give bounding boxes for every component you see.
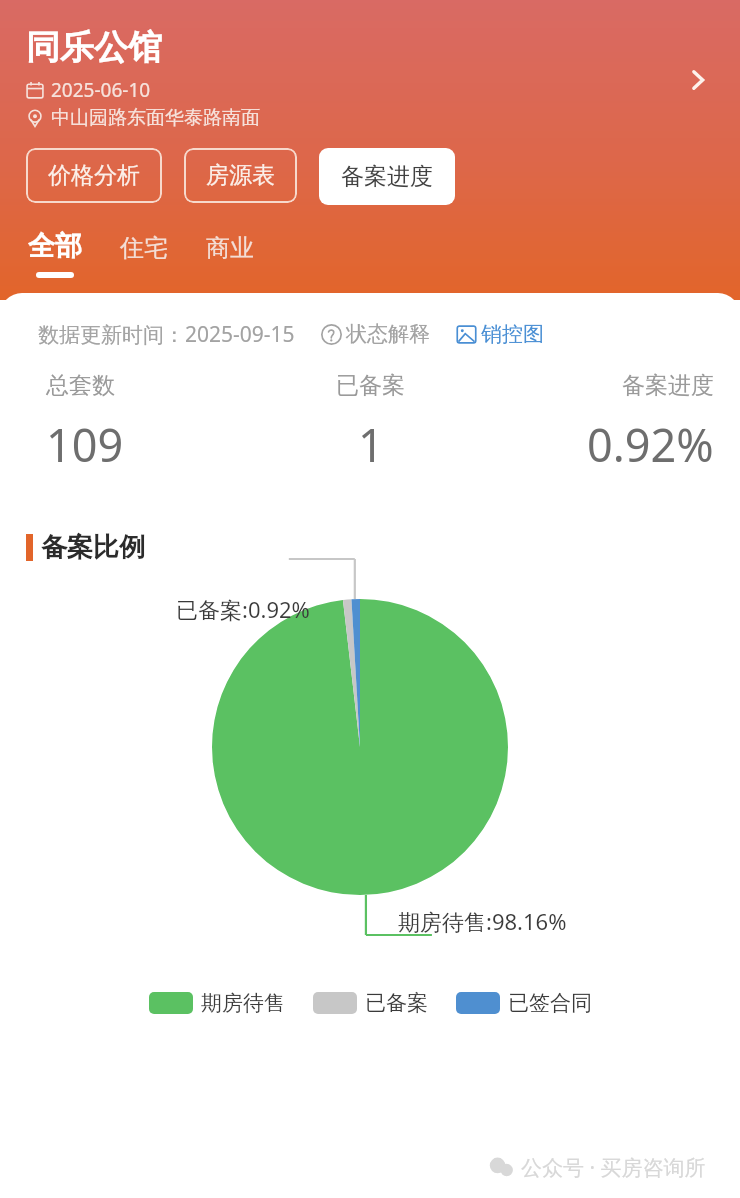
staticText: 销控图 xyxy=(481,321,544,347)
staticText: 住宅 xyxy=(120,233,168,263)
staticText: 期房待售:98.16% xyxy=(398,906,567,936)
staticText: 数据更新时间：2025-09-15 xyxy=(38,320,295,349)
staticText: 中山园路东面华泰路南面 xyxy=(51,106,260,130)
staticText: 备案比例 xyxy=(41,531,145,564)
button[interactable]: 房源表 xyxy=(184,148,297,203)
staticText: 商业 xyxy=(206,233,254,263)
staticText: 房源表 xyxy=(206,161,275,190)
button[interactable]: 备案进度 xyxy=(319,148,455,205)
staticText: 已备案 xyxy=(336,371,405,400)
staticText: 备案进度 xyxy=(622,371,714,400)
staticText: 109 xyxy=(46,414,124,475)
staticText: 总套数 xyxy=(46,371,115,400)
staticText: 全部 xyxy=(28,229,82,263)
staticText: 已备案 xyxy=(365,990,428,1016)
button[interactable]: 商业 xyxy=(198,231,262,280)
button[interactable]: 住宅 xyxy=(112,231,176,280)
button[interactable]: 销控图 xyxy=(454,319,546,349)
button[interactable]: 状态解释 xyxy=(319,319,432,349)
staticText: 同乐公馆 xyxy=(26,26,162,69)
button[interactable]: 价格分析 xyxy=(26,148,162,203)
staticText: 1 xyxy=(358,414,384,475)
button[interactable]: 已备案 xyxy=(311,988,430,1018)
staticText: 价格分析 xyxy=(48,161,140,190)
staticText: 状态解释 xyxy=(346,321,430,347)
button[interactable]: 已签合同 xyxy=(454,988,594,1018)
staticText: 已备案:0.92% xyxy=(176,594,310,624)
staticText: 已签合同 xyxy=(508,990,592,1016)
staticText: 期房待售 xyxy=(201,990,285,1016)
button[interactable]: 全部 xyxy=(20,227,90,280)
staticText: 备案进度 xyxy=(341,162,433,191)
staticText: 0.92% xyxy=(587,414,714,475)
button[interactable]: 期房待售 xyxy=(147,988,287,1018)
staticText: 2025-06-10 xyxy=(51,77,151,103)
staticText: 公众号 · 买房咨询所 xyxy=(521,1153,706,1182)
button[interactable]: 查看详情 xyxy=(676,58,720,102)
